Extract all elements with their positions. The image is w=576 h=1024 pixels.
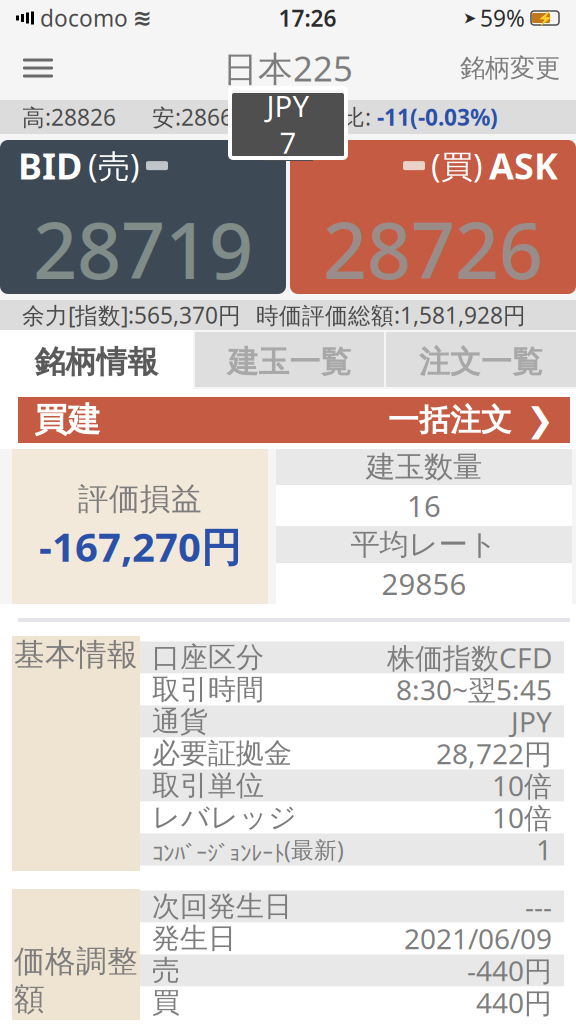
staticText: 平均レート [350,526,497,562]
staticText: ｺﾝﾊﾞｰｼﾞｮﾝﾚｰﾄ(最新) [152,834,344,864]
staticText: 440円 [476,984,552,1021]
staticText: 銘柄変更 [460,52,560,83]
staticText: 買 [152,985,180,1020]
staticText: 28726 [323,198,543,300]
button[interactable]: 注文一覧 [386,332,576,387]
staticText: 一括注文 [388,401,512,439]
staticText: 次回発生日 [152,889,292,924]
staticText: BID [18,142,82,189]
staticText: 17:26 [278,3,336,33]
staticText: ASK [489,142,558,189]
button[interactable]: メニュー [10,44,66,92]
staticText: -167,270円 [39,520,241,573]
button[interactable]: 建玉一覧 [195,332,384,387]
staticText: JPY [511,703,552,740]
staticText: 建玉数量 [366,449,482,485]
staticText: 発生日 [152,921,236,956]
staticText: -11(-0.03%) [377,102,498,132]
staticText: 高:28826 [22,102,116,132]
staticText: ➤ [463,9,476,27]
staticText: 前日比: [296,102,371,132]
staticText: 時価評価総額:1,581,928円 [256,300,526,330]
staticText: 通貨 [152,704,208,739]
staticText: --- [525,888,552,925]
staticText: 29856 [381,564,466,603]
staticText: 28719 [33,198,253,300]
staticText: 評価損益 [78,480,202,518]
staticText: ⚡ [536,10,553,26]
staticText: docomo [40,3,128,33]
staticText: -440円 [467,952,552,989]
staticText: JPY [266,86,309,125]
staticText: 取引単位 [152,768,264,803]
staticText: 28,722円 [436,735,552,772]
staticText: 1 [536,831,552,868]
button[interactable]: 買建 一括注文 [18,397,570,443]
staticText: 必要証拠金 [152,736,292,771]
staticText: (売) [88,144,140,187]
staticText: 16 [407,486,441,525]
staticText: 10倍 [492,767,552,804]
staticText: 日本225 [223,45,353,91]
staticText: 株価指数CFD [387,639,552,676]
staticText: 安:28667 [152,102,246,132]
staticText: 取引時間 [152,672,264,707]
staticText: 7 [279,123,296,162]
staticText: 建玉一覧 [227,343,351,381]
staticText: 注文一覧 [419,343,543,381]
staticText: ❯ [526,401,554,439]
staticText: 売 [152,953,180,988]
staticText: 基本情報 [14,636,138,674]
button[interactable]: BID 売 28719 [0,140,286,294]
staticText: 59% [480,3,525,33]
staticText: 価格調整額 [14,943,138,1018]
staticText: 余力[指数]:565,370円 [22,300,241,330]
staticText: 10倍 [492,799,552,836]
button[interactable]: 銘柄情報 [0,330,193,389]
staticText: 銘柄情報 [34,343,158,381]
button[interactable]: ASK 買 28726 [290,140,576,294]
staticText: (買) [431,144,483,187]
staticText: 買建 [34,399,100,440]
staticText: 2021/06/09 [404,920,552,957]
staticText: レバレッジ [152,800,297,835]
staticText: ≋ [133,5,152,31]
button[interactable]: 銘柄変更 [454,44,566,92]
staticText: 口座区分 [152,640,264,675]
staticText: 8:30~翌5:45 [396,671,552,708]
